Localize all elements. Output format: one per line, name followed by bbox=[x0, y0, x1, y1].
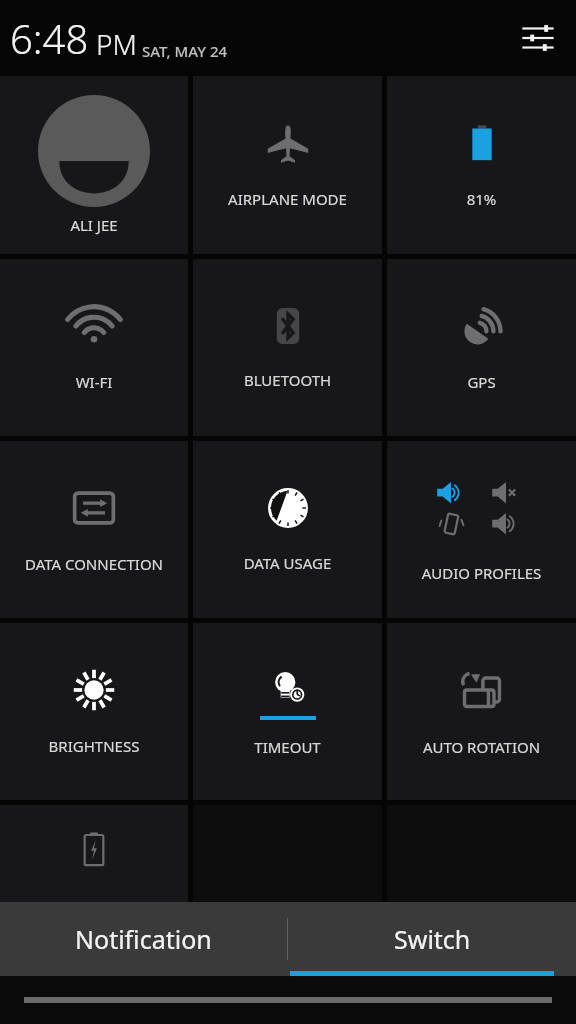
staticText: 81% bbox=[387, 189, 576, 209]
staticText: AUDIO PROFILES bbox=[387, 563, 576, 583]
staticText: Notification bbox=[75, 922, 212, 956]
button[interactable]: Notification bbox=[0, 902, 287, 976]
button[interactable]: BRIGHTNESS bbox=[0, 623, 188, 800]
button[interactable]: Switch bbox=[288, 902, 576, 976]
staticText: Switch bbox=[394, 922, 471, 956]
button[interactable]: TIMEOUT bbox=[193, 623, 382, 800]
button[interactable]: 81% bbox=[387, 76, 576, 254]
staticText: BLUETOOTH bbox=[193, 370, 382, 390]
staticText: WI-FI bbox=[0, 372, 188, 392]
button[interactable]: Settings bbox=[514, 14, 562, 62]
staticText: DATA USAGE bbox=[193, 553, 382, 573]
staticText: TIMEOUT bbox=[193, 737, 382, 757]
button[interactable]: AUTO ROTATION bbox=[387, 623, 576, 800]
staticText: SAT, MAY 24 bbox=[142, 41, 228, 61]
button[interactable]: GPS bbox=[387, 259, 576, 436]
button[interactable]: ALI JEE bbox=[0, 76, 188, 254]
staticText: AIRPLANE MODE bbox=[193, 189, 382, 209]
button[interactable]: AUDIO PROFILES bbox=[387, 441, 576, 618]
staticText: sibility bbox=[183, 816, 261, 851]
staticText: DATA CONNECTION bbox=[0, 554, 188, 574]
staticText: AUTO ROTATION bbox=[387, 737, 576, 757]
button[interactable]: BLUETOOTH bbox=[193, 259, 382, 436]
staticText: BRIGHTNESS bbox=[0, 736, 188, 756]
button[interactable]: AIRPLANE MODE bbox=[193, 76, 382, 254]
button[interactable] bbox=[0, 805, 188, 902]
staticText: 6:48 bbox=[10, 11, 89, 65]
staticText: GPS bbox=[387, 372, 576, 392]
staticText: PM bbox=[96, 25, 137, 63]
staticText: ALI JEE bbox=[0, 215, 188, 235]
button[interactable]: WI-FI bbox=[0, 259, 188, 436]
button[interactable]: DATA CONNECTION bbox=[0, 441, 188, 618]
button[interactable]: DATA USAGE bbox=[193, 441, 382, 618]
